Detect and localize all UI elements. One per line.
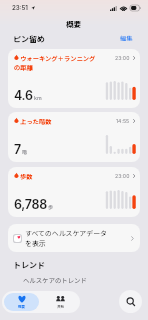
staticText: ピン留め (13, 33, 45, 45)
staticText: 概要 (66, 18, 82, 29)
button[interactable]: 編集 (118, 32, 135, 45)
staticText: 概要 (18, 304, 26, 309)
staticText: 6,788 (14, 197, 47, 212)
button[interactable]: 概要 (4, 293, 39, 311)
button[interactable]: Search (119, 290, 142, 313)
staticText: 共有 (57, 304, 65, 309)
staticText: 編集 (120, 34, 133, 43)
staticText: トレンド (13, 259, 45, 271)
staticText: 23:51 (12, 4, 28, 12)
staticText: ウォーキング＋ランニング (20, 54, 96, 63)
button[interactable]: 共有 (41, 291, 80, 313)
button[interactable]: すべてのヘルスケアデータ (8, 224, 140, 252)
staticText: 23:00 (115, 173, 130, 179)
staticText: 歩 (48, 203, 54, 210)
button[interactable]: 上った階数 (8, 112, 140, 162)
staticText: 階 (22, 148, 28, 155)
staticText: 14:55 (116, 118, 130, 124)
button[interactable]: 歩数 (8, 167, 140, 217)
staticText: 歩数 (20, 172, 33, 181)
button[interactable]: ウォーキング＋ランニング (8, 49, 140, 108)
staticText: の距離 (14, 63, 33, 72)
staticText: 7 (14, 142, 21, 157)
staticText: ヘルスケアのトレンド (23, 276, 87, 285)
staticText: km (34, 94, 42, 101)
staticText: を表示 (25, 238, 46, 248)
staticText: 23:00 (115, 55, 130, 61)
staticText: 4.6 (14, 88, 33, 103)
staticText: すべてのヘルスケアデータ (25, 228, 107, 238)
staticText: 上った階数 (20, 117, 52, 126)
